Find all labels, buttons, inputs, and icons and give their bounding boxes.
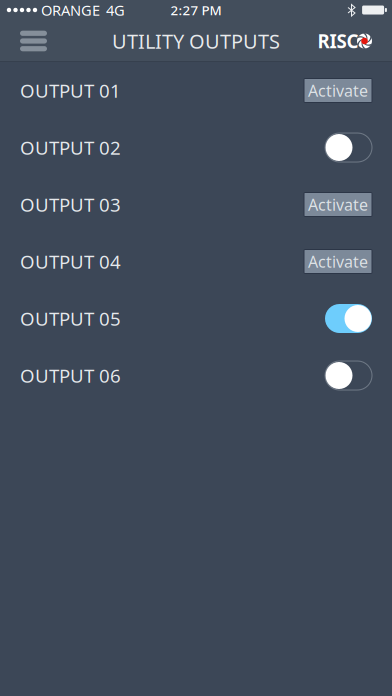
staticText: OUTPUT 05 bbox=[20, 306, 121, 331]
staticText: OUTPUT 06 bbox=[20, 363, 121, 388]
button[interactable]: OUTPUT 04 bbox=[0, 233, 392, 290]
button[interactable]: OUTPUT 02 bbox=[0, 119, 392, 176]
button[interactable]: OUTPUT 03 bbox=[0, 176, 392, 233]
button[interactable]: Activate bbox=[304, 192, 372, 216]
staticText: RISC bbox=[317, 29, 358, 53]
button[interactable]: Menu bbox=[0, 20, 47, 62]
staticText: OUTPUT 03 bbox=[20, 192, 121, 217]
button[interactable]: RISCO bbox=[302, 20, 372, 62]
staticText: ORANGE bbox=[41, 0, 100, 20]
button[interactable]: Turn on output bbox=[325, 133, 372, 162]
staticText: 4G bbox=[106, 0, 125, 20]
button[interactable]: OUTPUT 05 bbox=[0, 290, 392, 347]
staticText: OUTPUT 01 bbox=[20, 78, 121, 103]
staticText: UTILITY OUTPUTS bbox=[112, 28, 280, 54]
staticText: 2:27 PM bbox=[170, 1, 221, 19]
staticText: Activate bbox=[308, 80, 368, 101]
staticText: OUTPUT 04 bbox=[20, 249, 121, 274]
staticText: Activate bbox=[308, 194, 368, 215]
button[interactable]: Activate bbox=[304, 78, 372, 102]
button[interactable]: Activate bbox=[304, 249, 372, 273]
button[interactable]: OUTPUT 06 bbox=[0, 347, 392, 404]
button[interactable]: Turn off output bbox=[325, 304, 372, 333]
button[interactable]: OUTPUT 01 bbox=[0, 62, 392, 119]
staticText: OUTPUT 02 bbox=[20, 135, 121, 160]
button[interactable]: Turn on output bbox=[325, 361, 372, 390]
staticText: Activate bbox=[308, 251, 368, 272]
